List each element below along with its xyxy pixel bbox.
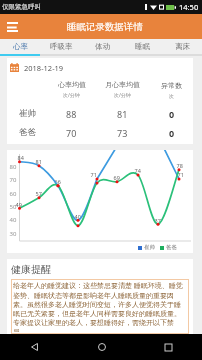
staticText: 0 — [169, 108, 175, 120]
staticText: 离床 — [175, 42, 190, 51]
button[interactable]: 心率 — [0, 39, 41, 54]
button[interactable]: 离床 — [162, 39, 202, 54]
staticText: 崔帅 — [144, 244, 155, 251]
button[interactable]: 体动 — [82, 39, 122, 54]
staticText: 爸爸 — [166, 244, 177, 251]
staticText: 2018-12-19 — [24, 63, 64, 73]
staticText: 崔帅 — [19, 108, 36, 119]
button[interactable]: 爸爸 — [7, 123, 193, 142]
button[interactable]: Back — [0, 334, 68, 360]
staticText: 次/分钟 — [63, 92, 80, 99]
staticText: 次/分钟 — [114, 92, 131, 99]
button[interactable]: 呼吸率 — [41, 39, 82, 54]
button[interactable]: 崔帅 — [7, 104, 193, 123]
staticText: 心率 — [13, 42, 28, 51]
staticText: 仅限紧急呼叫 — [2, 3, 41, 11]
staticText: 次 — [169, 93, 174, 99]
button[interactable]: Home — [68, 334, 135, 360]
staticText: 70 — [66, 127, 77, 139]
staticText: 睡眠记录数据详情 — [67, 21, 143, 33]
staticText: 73 — [117, 127, 128, 139]
button[interactable]: 2018-12-19 — [10, 58, 193, 77]
staticText: 月心率均值 — [105, 80, 140, 89]
staticText: 81 — [117, 108, 128, 120]
staticText: 给老年人的睡觉建议：这些禁忌要清楚 睡眠环境、睡觉姿势、睡眠状态等都是影响老年人… — [13, 281, 187, 332]
button[interactable]: 睡眠 — [122, 39, 162, 54]
staticText: 14:50 — [179, 2, 199, 12]
staticText: 0 — [169, 127, 175, 139]
staticText: 呼吸率 — [50, 42, 73, 51]
button[interactable]: Recents — [135, 334, 202, 360]
button[interactable]: Menu — [2, 17, 22, 37]
staticText: 体动 — [95, 42, 110, 51]
staticText: 睡眠 — [135, 42, 150, 51]
staticText: 爸爸 — [19, 127, 36, 138]
staticText: 异常数 — [161, 81, 182, 90]
staticText: 健康提醒 — [11, 263, 51, 276]
staticText: 88 — [66, 108, 77, 120]
staticText: 心率均值 — [58, 80, 86, 89]
